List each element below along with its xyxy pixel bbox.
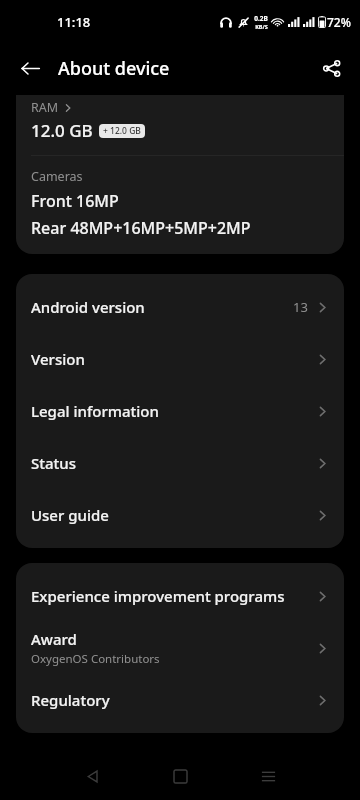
button[interactable]: Regulatory bbox=[16, 674, 344, 726]
button[interactable]: RAM bbox=[16, 95, 344, 155]
button[interactable]: Back bbox=[14, 52, 47, 85]
staticText: Android version bbox=[31, 297, 145, 317]
button[interactable]: Back bbox=[72, 756, 112, 796]
staticText: OxygenOS Contributors bbox=[31, 651, 160, 667]
staticText: Regulatory bbox=[31, 690, 110, 710]
button[interactable]: Version bbox=[16, 333, 344, 385]
staticText: Legal information bbox=[31, 401, 159, 421]
staticText: Rear 48MP+16MP+5MP+2MP bbox=[31, 217, 251, 239]
button[interactable]: Award bbox=[16, 622, 344, 674]
button[interactable]: Cameras bbox=[16, 156, 344, 254]
staticText: Experience improvement programs bbox=[31, 586, 285, 606]
button[interactable]: Home bbox=[160, 756, 200, 796]
staticText: 72% bbox=[327, 14, 351, 30]
button[interactable]: Share bbox=[315, 52, 347, 84]
staticText: Version bbox=[31, 349, 85, 369]
staticText: 13 bbox=[293, 298, 308, 316]
staticText: About device bbox=[58, 56, 170, 81]
staticText: KB/S bbox=[255, 23, 268, 30]
button[interactable]: Android version bbox=[16, 281, 344, 333]
button[interactable]: Recent apps bbox=[248, 756, 288, 796]
button[interactable]: Status bbox=[16, 437, 344, 489]
staticText: Front 16MP bbox=[31, 190, 119, 212]
button[interactable]: Experience improvement programs bbox=[16, 570, 344, 622]
staticText: RAM bbox=[31, 99, 59, 116]
staticText: 12.0 GB bbox=[31, 119, 93, 142]
staticText: 11:18 bbox=[57, 13, 91, 31]
staticText: Cameras bbox=[31, 168, 83, 185]
button[interactable]: User guide bbox=[16, 489, 344, 541]
button[interactable]: Legal information bbox=[16, 385, 344, 437]
staticText: User guide bbox=[31, 505, 109, 525]
staticText: Award bbox=[31, 629, 77, 649]
staticText: 0.2B bbox=[254, 14, 268, 23]
staticText: Status bbox=[31, 453, 77, 473]
staticText: + 12.0 GB bbox=[103, 125, 141, 137]
